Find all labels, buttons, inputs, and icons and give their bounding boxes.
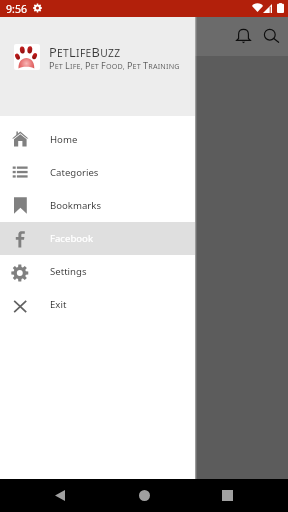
button[interactable]: Recent apps <box>215 479 239 512</box>
button[interactable]: Notifications <box>232 24 256 48</box>
button[interactable]: Categories <box>0 156 195 189</box>
staticText: PET LIFE, PET FOOD, PET TRAINING <box>49 59 180 71</box>
button[interactable]: Bookmarks <box>0 189 195 222</box>
button[interactable]: Settings <box>0 255 195 288</box>
button[interactable]: Facebook <box>0 222 195 255</box>
staticText: Settings <box>50 265 87 278</box>
button[interactable]: Exit <box>0 288 195 321</box>
staticText: Categories <box>50 166 99 179</box>
staticText: 9:56 <box>6 2 28 16</box>
staticText: Home <box>50 133 78 146</box>
button[interactable]: Home <box>0 123 195 156</box>
staticText: PETLIFEBUZZ <box>49 43 121 60</box>
button[interactable]: Search <box>260 24 284 48</box>
staticText: Bookmarks <box>50 199 102 212</box>
button[interactable]: Home <box>132 479 156 512</box>
staticText: Facebook <box>50 232 94 245</box>
button[interactable]: Back <box>46 479 74 512</box>
staticText: Exit <box>50 298 67 311</box>
